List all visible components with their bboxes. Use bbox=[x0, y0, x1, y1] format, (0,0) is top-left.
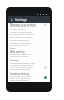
staticText: you wish to do so bbox=[10, 44, 28, 47]
staticText: give better results bbox=[10, 79, 29, 82]
button[interactable]: More options bbox=[44, 23, 47, 26]
staticText: with your devices to bbox=[10, 77, 31, 80]
staticText: and sites you visit bbox=[10, 55, 29, 58]
staticText: More bbox=[10, 47, 16, 50]
staticText: Location history bbox=[10, 72, 30, 75]
staticText: includes recordings bbox=[10, 68, 31, 71]
staticText: Manage bbox=[10, 59, 19, 62]
staticText: to improve experience bbox=[10, 64, 33, 67]
staticText: Device information used bbox=[10, 62, 36, 65]
button[interactable]: Toggle voice and audio activity bbox=[44, 66, 47, 69]
staticText: can be reviewed or bbox=[10, 39, 30, 42]
staticText: deleted at any time bbox=[10, 42, 30, 45]
staticText: Web activity bbox=[10, 50, 25, 53]
staticText: in your account bbox=[10, 28, 26, 31]
staticText: Saves where you go bbox=[10, 75, 31, 78]
button[interactable]: Back bbox=[8, 16, 15, 23]
staticText: Voice and audio data bbox=[10, 66, 32, 69]
staticText: Choose what gets saved bbox=[10, 25, 35, 28]
staticText: Saves your searches bbox=[10, 53, 31, 56]
staticText: Manage your activity bbox=[10, 23, 36, 27]
staticText: the experience relevant bbox=[10, 33, 35, 36]
staticText: Data saved in account bbox=[10, 36, 33, 39]
button[interactable]: Toggle location history bbox=[44, 76, 47, 79]
staticText: Settings bbox=[15, 18, 28, 22]
staticText: Activity controls keep bbox=[10, 31, 32, 34]
